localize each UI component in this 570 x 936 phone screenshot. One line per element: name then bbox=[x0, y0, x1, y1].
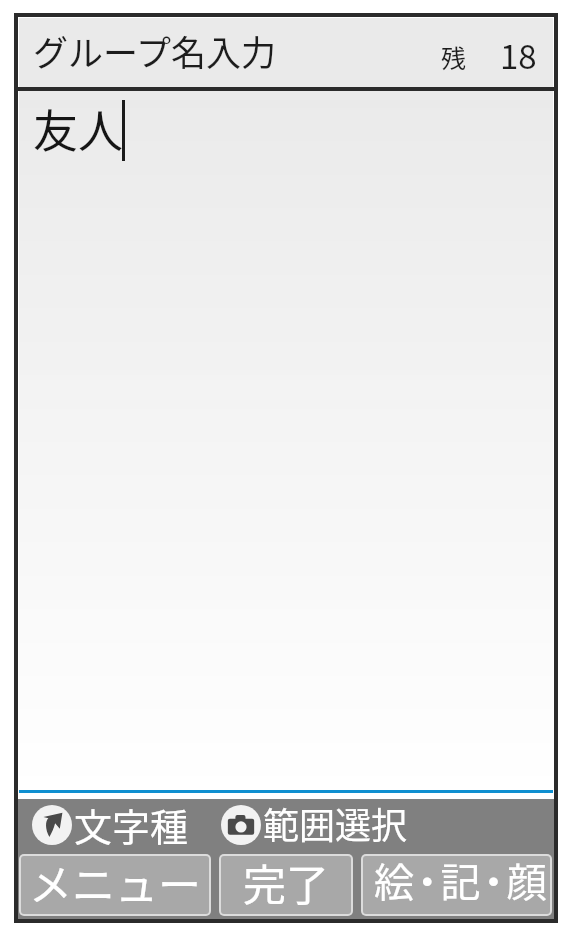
staticText: 友人 bbox=[33, 96, 124, 161]
other: 文字種 bbox=[32, 805, 72, 845]
button[interactable]: グループ名入力 bbox=[19, 18, 553, 87]
button[interactable]: 完了 bbox=[221, 856, 351, 914]
staticText: メニュー bbox=[29, 856, 201, 909]
button[interactable]: 絵・記・顔 bbox=[363, 856, 550, 914]
staticText: グループ名入力 bbox=[33, 25, 276, 76]
other: 範囲選択 bbox=[221, 805, 261, 845]
button[interactable]: 友人 bbox=[19, 91, 553, 793]
staticText: 残 bbox=[441, 39, 467, 75]
button[interactable]: 文字種 bbox=[18, 799, 189, 851]
staticText: 18 bbox=[500, 31, 537, 79]
staticText: 文字種 bbox=[74, 797, 189, 849]
button[interactable]: メニュー bbox=[21, 856, 209, 914]
staticText: 絵・記・顔 bbox=[374, 856, 540, 909]
staticText: 完了 bbox=[243, 856, 329, 909]
staticText: 範囲選択 bbox=[263, 797, 408, 849]
button[interactable]: 範囲選択 bbox=[221, 799, 408, 851]
